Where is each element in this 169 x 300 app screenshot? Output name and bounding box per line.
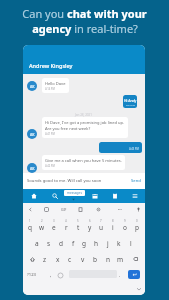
button[interactable]: Send bbox=[127, 175, 145, 187]
staticText: w bbox=[39, 223, 45, 232]
button[interactable]: Andrew Kingsley avatar bbox=[27, 81, 37, 91]
staticText: g bbox=[82, 239, 86, 248]
button[interactable]: Sent message Hi Andy bbox=[123, 95, 137, 108]
staticText: b bbox=[93, 255, 97, 264]
button[interactable]: Hi Dave, I've got a promising job lined … bbox=[42, 117, 128, 138]
button[interactable]: Clipboard bbox=[74, 203, 86, 215]
button[interactable]: s bbox=[43, 235, 55, 251]
button[interactable]: 3 bbox=[48, 215, 60, 235]
staticText: 4:42 PM bbox=[45, 164, 55, 168]
button[interactable]: Shift bbox=[26, 251, 38, 267]
button[interactable]: , bbox=[46, 267, 56, 283]
button[interactable]: z bbox=[39, 251, 51, 267]
button[interactable]: Home bbox=[23, 189, 44, 203]
button[interactable]: 0 bbox=[131, 215, 143, 235]
button[interactable]: Settings bbox=[92, 203, 104, 215]
button[interactable]: 4 bbox=[60, 215, 72, 235]
staticText: l bbox=[130, 239, 132, 248]
button[interactable]: 6 bbox=[84, 215, 96, 235]
staticText: m bbox=[117, 255, 124, 264]
staticText: , bbox=[50, 272, 52, 279]
staticText: AK bbox=[30, 166, 35, 171]
button[interactable]: x bbox=[52, 251, 64, 267]
button[interactable]: Jobs bbox=[105, 189, 125, 203]
button[interactable]: 7 bbox=[95, 215, 107, 235]
staticText: 4:41 PM bbox=[45, 132, 55, 136]
button[interactable]: ?123 bbox=[25, 267, 39, 283]
button[interactable]: Language bbox=[56, 267, 64, 283]
button[interactable]: Give me a call when you have 5 minutes. bbox=[42, 155, 125, 170]
staticText: h bbox=[94, 239, 99, 248]
button[interactable]: m bbox=[114, 251, 126, 267]
button[interactable]: l bbox=[125, 235, 137, 251]
button[interactable]: Andrew Kingsley avatar bbox=[27, 129, 37, 139]
staticText: Give me a call when you have 5 minutes. bbox=[45, 158, 122, 164]
staticText: AK bbox=[30, 132, 35, 137]
staticText: Andrew Kingsley bbox=[29, 62, 73, 69]
button[interactable]: 1 bbox=[24, 215, 36, 235]
staticText: u bbox=[99, 223, 104, 232]
staticText: 4:41 PM bbox=[126, 103, 135, 106]
staticText: Hello Dave bbox=[45, 81, 66, 87]
button[interactable]: Backspace bbox=[129, 251, 141, 267]
button[interactable]: Messages bbox=[65, 189, 85, 203]
staticText: d bbox=[59, 239, 63, 248]
button[interactable]: Enter bbox=[128, 270, 140, 279]
staticText: 4:14 PM bbox=[45, 87, 55, 91]
staticText: n bbox=[106, 255, 111, 264]
button[interactable]: n bbox=[102, 251, 114, 267]
staticText: ?123 bbox=[27, 272, 37, 278]
button[interactable]: h bbox=[90, 235, 102, 251]
staticText: 5 bbox=[77, 219, 79, 223]
button[interactable]: Stickers bbox=[40, 203, 52, 215]
button[interactable]: f bbox=[67, 235, 79, 251]
button[interactable]: 8 bbox=[107, 215, 119, 235]
staticText: agency in real-time? bbox=[32, 21, 138, 36]
button[interactable]: a bbox=[31, 235, 43, 251]
staticText: 9 bbox=[124, 219, 126, 223]
staticText: r bbox=[65, 223, 68, 232]
staticText: . bbox=[119, 272, 121, 279]
staticText: f bbox=[72, 239, 75, 248]
button[interactable]: Back bbox=[24, 203, 36, 215]
staticText: Send bbox=[131, 178, 141, 184]
button[interactable]: k bbox=[113, 235, 125, 251]
staticText: t bbox=[77, 223, 80, 232]
button[interactable]: b bbox=[89, 251, 101, 267]
staticText: 0 bbox=[136, 219, 138, 223]
staticText: e bbox=[52, 223, 56, 232]
button[interactable]: g bbox=[78, 235, 90, 251]
button[interactable]: 5 bbox=[72, 215, 84, 235]
button[interactable]: GIF bbox=[58, 203, 70, 215]
staticText: 3 bbox=[53, 219, 55, 223]
staticText: v bbox=[81, 255, 85, 264]
button[interactable]: 9 bbox=[119, 215, 131, 235]
button[interactable]: j bbox=[102, 235, 114, 251]
staticText: o bbox=[123, 223, 127, 232]
button[interactable]: Calendar bbox=[85, 189, 105, 203]
staticText: Are you free next week? bbox=[45, 126, 91, 132]
button[interactable]: Search bbox=[44, 189, 65, 203]
button[interactable]: Hide keyboard bbox=[135, 283, 143, 295]
button[interactable]: Hello Dave bbox=[42, 78, 69, 93]
button[interactable]: v bbox=[77, 251, 89, 267]
staticText: GIF bbox=[61, 207, 67, 212]
button[interactable]: Menu bbox=[125, 189, 145, 203]
button[interactable]: . bbox=[116, 267, 124, 283]
button[interactable]: Voice input bbox=[132, 203, 144, 215]
button[interactable]: Andrew Kingsley avatar bbox=[27, 163, 37, 173]
staticText: Hi Andy bbox=[124, 98, 137, 103]
button[interactable]: Sent message 4:43 PM bbox=[99, 142, 142, 153]
button[interactable]: ••• bbox=[114, 203, 126, 215]
button[interactable]: c bbox=[64, 251, 76, 267]
staticText: p bbox=[135, 223, 139, 232]
staticText: 1 bbox=[29, 219, 31, 223]
staticText: z bbox=[43, 255, 47, 264]
button[interactable]: 2 bbox=[36, 215, 48, 235]
staticText: ••• bbox=[118, 207, 122, 212]
staticText: 6 bbox=[89, 219, 91, 223]
staticText: k bbox=[117, 239, 121, 248]
staticText: Sounds good to me. Will call you soon bbox=[27, 178, 102, 184]
button[interactable]: d bbox=[55, 235, 67, 251]
